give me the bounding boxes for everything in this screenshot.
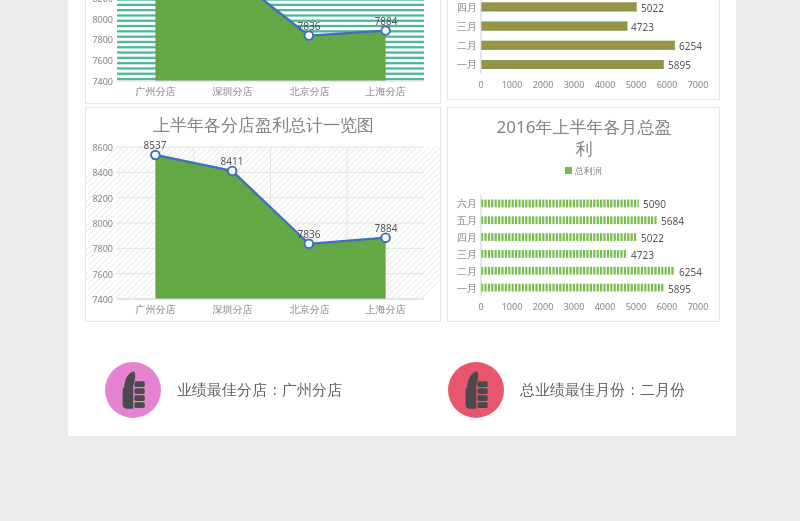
button[interactable]: Thumbs up <box>105 361 342 419</box>
staticText: 7400 <box>85 293 113 305</box>
button[interactable]: 2016年上半年各月总盈 利 <box>447 107 720 322</box>
staticText: 8000 <box>85 217 113 229</box>
staticText: 二月 <box>449 265 477 278</box>
staticText: 总业绩最佳月份：二月份 <box>520 381 685 400</box>
staticText: 8411 <box>212 154 252 168</box>
staticText: 8600 <box>85 141 113 153</box>
staticText: 8537 <box>135 138 175 152</box>
button[interactable]: Thumbs up <box>448 361 685 419</box>
staticText: 2016年上半年各月总盈 利 <box>469 115 699 160</box>
staticText: 8200 <box>85 0 113 4</box>
staticText: 0 <box>465 300 497 312</box>
staticText: 8400 <box>85 166 113 178</box>
staticText: 3000 <box>558 78 590 90</box>
staticText: 上海分店 <box>347 303 424 316</box>
staticText: 5022 <box>641 231 664 245</box>
staticText: 3000 <box>558 300 590 312</box>
staticText: 6000 <box>651 78 683 90</box>
staticText: 2000 <box>527 300 559 312</box>
staticText: 8200 <box>85 192 113 204</box>
staticText: 四月 <box>449 231 477 244</box>
staticText: 广州分店 <box>117 303 194 316</box>
other: Thumbs up <box>448 362 504 418</box>
staticText: 业绩最佳分店：广州分店 <box>177 381 342 400</box>
staticText: 6000 <box>651 300 683 312</box>
button[interactable]: 上半年各分店盈利总计一览图 <box>85 107 441 322</box>
staticText: 7836 <box>289 227 329 241</box>
staticText: 上海分店 <box>347 85 424 98</box>
staticText: 8000 <box>85 13 113 25</box>
staticText: 三月 <box>449 20 477 33</box>
staticText: 一月 <box>449 58 477 71</box>
staticText: 5895 <box>668 58 691 72</box>
staticText: 5895 <box>668 282 691 296</box>
staticText: 7884 <box>366 221 406 235</box>
staticText: 7884 <box>366 14 406 28</box>
staticText: 4723 <box>631 248 654 262</box>
other: Thumbs up <box>105 362 161 418</box>
staticText: 北京分店 <box>271 85 348 98</box>
staticText: 7800 <box>85 33 113 45</box>
staticText: 广州分店 <box>117 85 194 98</box>
staticText: 1000 <box>496 78 528 90</box>
staticText: 5000 <box>620 300 652 312</box>
staticText: 6254 <box>679 39 702 53</box>
staticText: 7400 <box>85 75 113 87</box>
button[interactable]: 2016年上半年各月总盈 利 <box>447 0 720 100</box>
staticText: 深圳分店 <box>194 85 271 98</box>
staticText: 上半年各分店盈利总计一览图 <box>153 115 374 136</box>
staticText: 2000 <box>527 78 559 90</box>
staticText: 三月 <box>449 248 477 261</box>
staticText: 5000 <box>620 78 652 90</box>
staticText: 五月 <box>449 214 477 227</box>
staticText: 四月 <box>449 1 477 14</box>
staticText: 六月 <box>449 197 477 210</box>
staticText: 0 <box>465 78 497 90</box>
staticText: 7800 <box>85 242 113 254</box>
staticText: 7600 <box>85 268 113 280</box>
staticText: 二月 <box>449 39 477 52</box>
staticText: 5022 <box>641 1 664 15</box>
staticText: 6254 <box>679 265 702 279</box>
staticText: 一月 <box>449 282 477 295</box>
staticText: 7000 <box>682 78 714 90</box>
staticText: 5684 <box>661 214 684 228</box>
staticText: 4000 <box>589 78 621 90</box>
staticText: 7600 <box>85 54 113 66</box>
staticText: 深圳分店 <box>194 303 271 316</box>
staticText: 5090 <box>643 197 666 211</box>
staticText: 1000 <box>496 300 528 312</box>
staticText: 4723 <box>631 20 654 34</box>
button[interactable]: 7400 <box>85 0 441 104</box>
staticText: 北京分店 <box>271 303 348 316</box>
staticText: 4000 <box>589 300 621 312</box>
staticText: 7836 <box>289 19 329 33</box>
staticText: 7000 <box>682 300 714 312</box>
staticText: 总利润 <box>575 165 602 176</box>
